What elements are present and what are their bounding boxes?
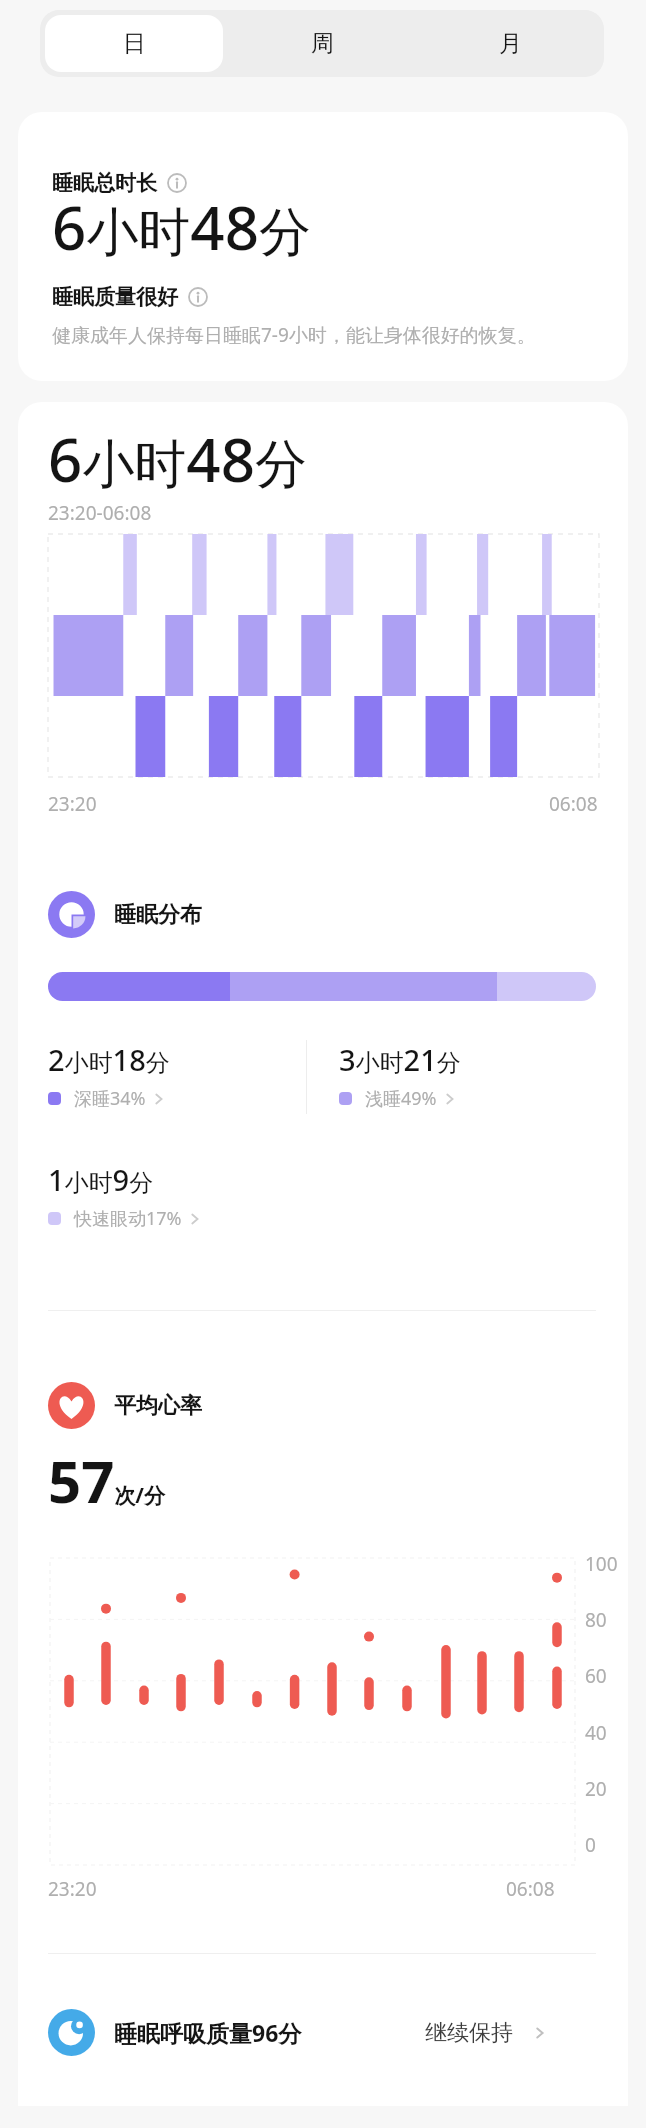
button[interactable]: 月 [421, 15, 599, 72]
staticText: 80 [585, 1607, 607, 1633]
staticText: 23:20 [48, 791, 97, 817]
staticText: 1小时9分 [48, 1160, 154, 1199]
button[interactable]: 1小时9分 [48, 1160, 323, 1231]
staticText: 3小时21分 [339, 1040, 461, 1079]
other: 睡眠呼吸质量 [48, 2009, 95, 2056]
staticText: 20 [585, 1776, 607, 1802]
button[interactable]: 周 [233, 15, 411, 72]
staticText: 月 [499, 29, 522, 58]
staticText: 2小时18分 [48, 1040, 170, 1079]
staticText: 平均心率 [114, 1392, 202, 1420]
other: 睡眠分布 [48, 891, 95, 938]
staticText: 6小时48分 [48, 418, 307, 499]
staticText: 06:08 [549, 791, 598, 817]
staticText: 57次/分 [48, 1441, 166, 1520]
button[interactable]: 睡眠呼吸质量 [48, 2009, 596, 2056]
staticText: 周 [311, 29, 334, 58]
button[interactable]: 2小时18分 [48, 1040, 306, 1111]
staticText: 浅睡49% [365, 1086, 437, 1111]
staticText: 睡眠呼吸质量96分 [114, 2017, 302, 2048]
button[interactable]: 睡眠分布 [48, 891, 202, 938]
button[interactable]: 日 [45, 15, 223, 72]
staticText: 23:20-06:08 [48, 500, 152, 526]
staticText: 日 [123, 29, 146, 58]
staticText: 睡眠分布 [114, 901, 202, 929]
staticText: 6小时48分 [52, 186, 311, 258]
staticText: 深睡34% [74, 1086, 146, 1111]
staticText: 继续保持 [425, 2019, 513, 2047]
staticText: 60 [585, 1663, 607, 1689]
staticText: 06:08 [506, 1876, 555, 1902]
staticText: 23:20 [48, 1876, 97, 1902]
staticText: 睡眠质量很好 [52, 284, 178, 310]
staticText: 0 [585, 1832, 596, 1858]
button[interactable]: 3小时21分 [339, 1040, 598, 1111]
staticText: 40 [585, 1720, 607, 1746]
staticText: 健康成年人保持每日睡眠7-9小时，能让身体很好的恢复。 [52, 322, 536, 348]
button[interactable]: 平均心率 [48, 1382, 202, 1429]
staticText: 快速眼动17% [74, 1206, 182, 1231]
staticText: 100 [585, 1551, 618, 1577]
staticText: 睡眠总时长 [52, 170, 157, 196]
button[interactable]: 睡眠总时长 [18, 112, 628, 381]
